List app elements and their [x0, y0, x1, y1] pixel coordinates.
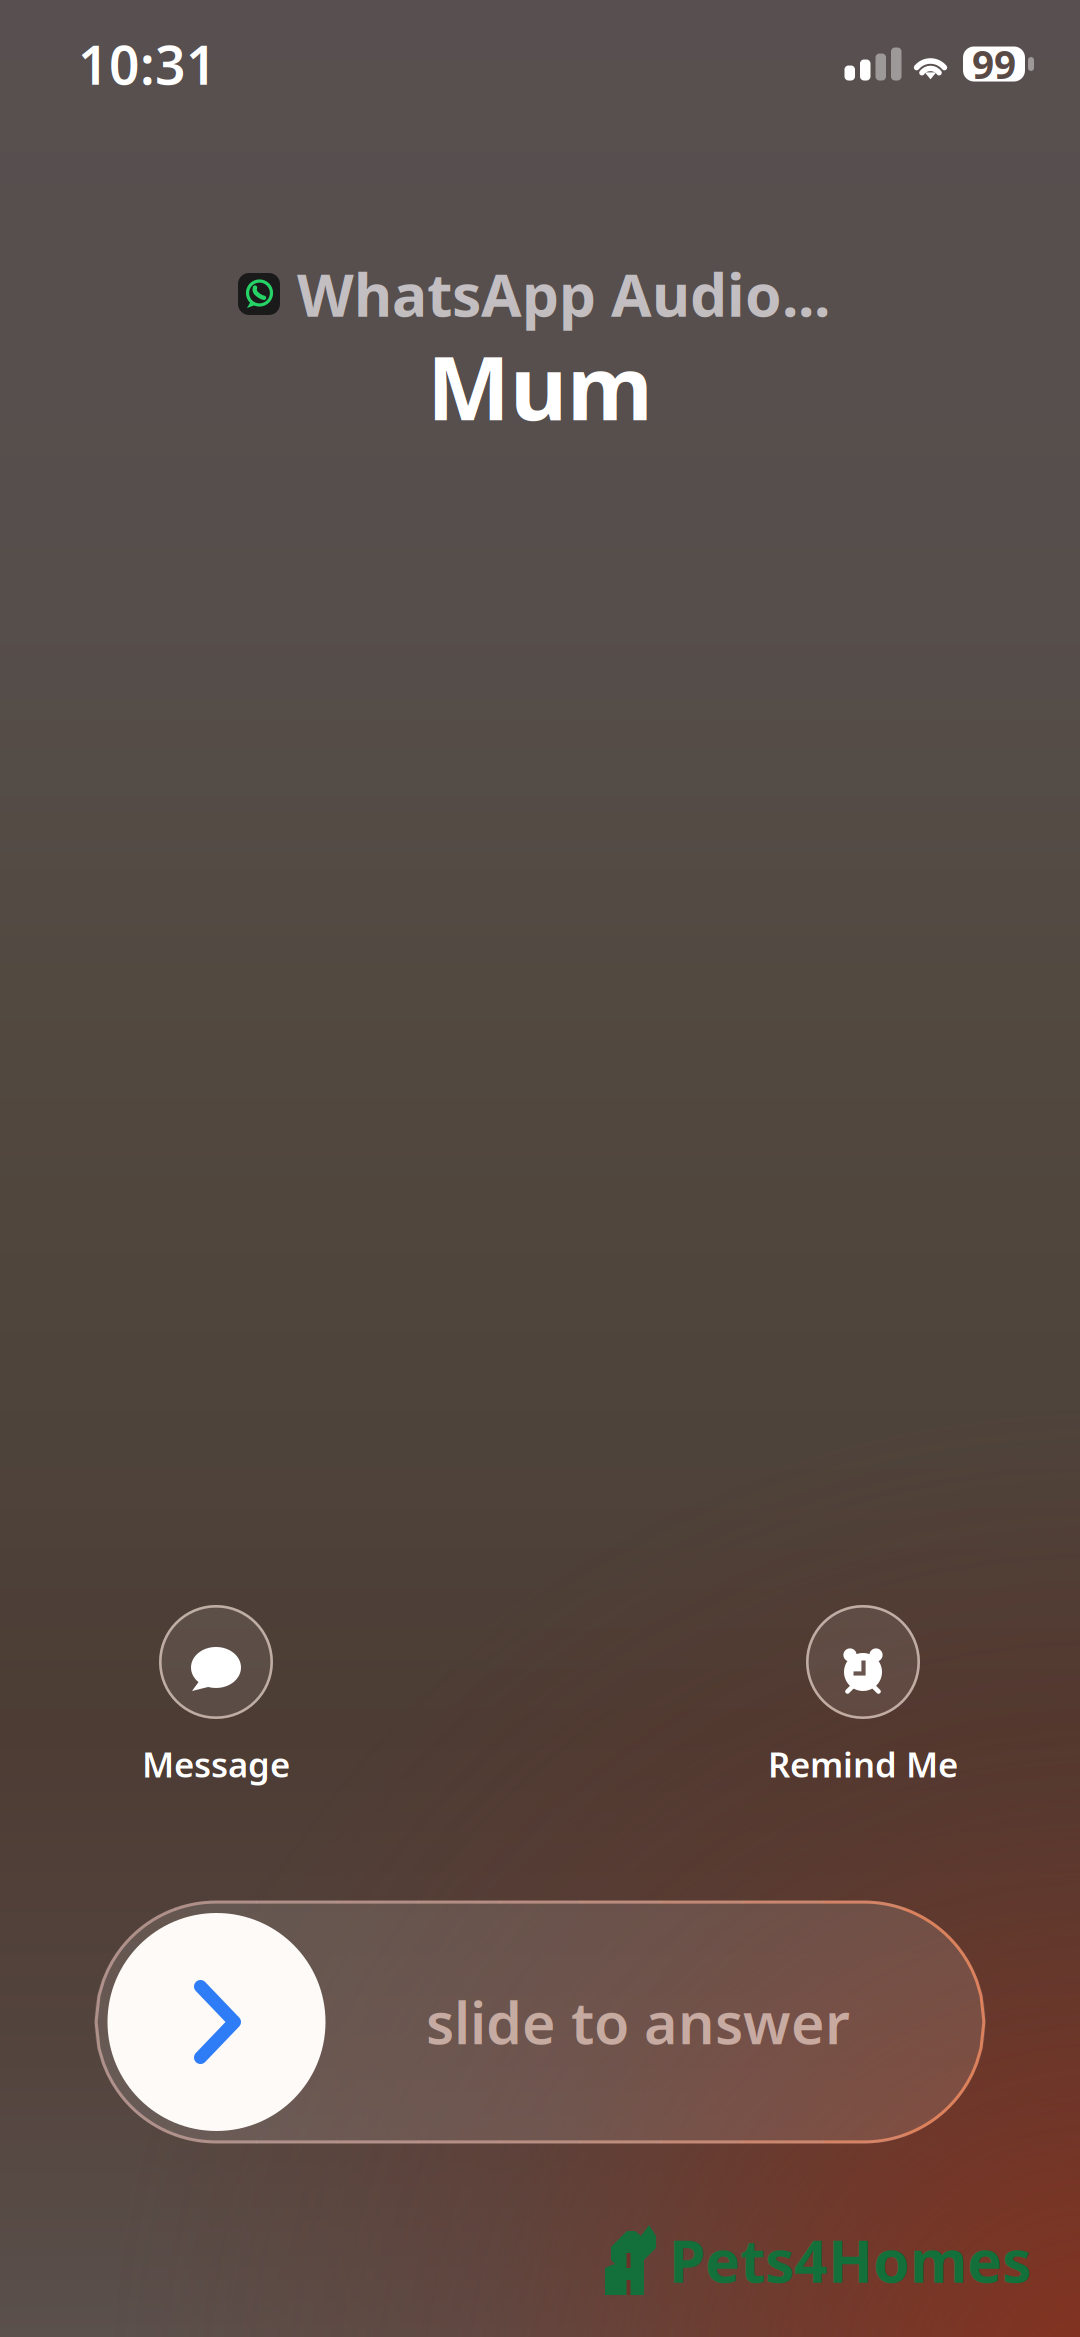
staticText: Message [142, 1741, 290, 1787]
staticText: 99 [972, 38, 1016, 90]
button[interactable]: Message [66, 1604, 366, 1788]
staticText: slide to answer [426, 1984, 850, 2060]
staticText: Mum [427, 328, 653, 444]
button[interactable]: Remind Me [713, 1604, 1013, 1788]
staticText: 10:31 [78, 29, 217, 99]
staticText: Remind Me [768, 1741, 958, 1787]
staticText: Pets4Homes [669, 2221, 1031, 2299]
staticText: WhatsApp Audio... [297, 255, 830, 333]
button[interactable]: slide to answer [94, 1900, 985, 2143]
